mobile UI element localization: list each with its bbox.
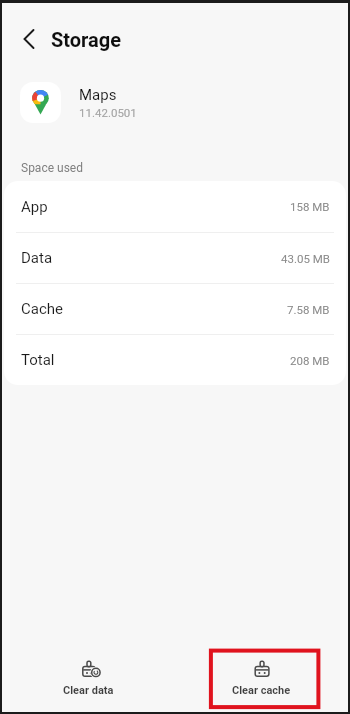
staticText: Space used xyxy=(21,161,83,175)
button[interactable]: Cache xyxy=(4,284,346,334)
staticText: App xyxy=(21,198,48,216)
button[interactable] xyxy=(21,29,41,49)
staticText: Maps xyxy=(79,86,117,104)
staticText: Clear data xyxy=(63,684,114,697)
staticText: 158 MB xyxy=(290,200,330,213)
staticText: Data xyxy=(21,249,53,267)
staticText: Total xyxy=(21,351,55,369)
staticText: Storage xyxy=(51,28,122,51)
staticText: 7.58 MB xyxy=(287,303,330,316)
staticText: 43.05 MB xyxy=(281,252,330,265)
staticText: 208 MB xyxy=(290,354,330,367)
button[interactable]: App xyxy=(4,181,346,232)
button[interactable]: Clear data xyxy=(2,634,175,712)
staticText: 11.42.0501 xyxy=(79,106,137,119)
button[interactable]: Total xyxy=(4,335,346,385)
staticText: Cache xyxy=(21,300,63,318)
button[interactable]: Clear cache xyxy=(175,634,348,712)
button[interactable]: Data xyxy=(4,233,346,283)
staticText: Clear cache xyxy=(232,684,291,697)
